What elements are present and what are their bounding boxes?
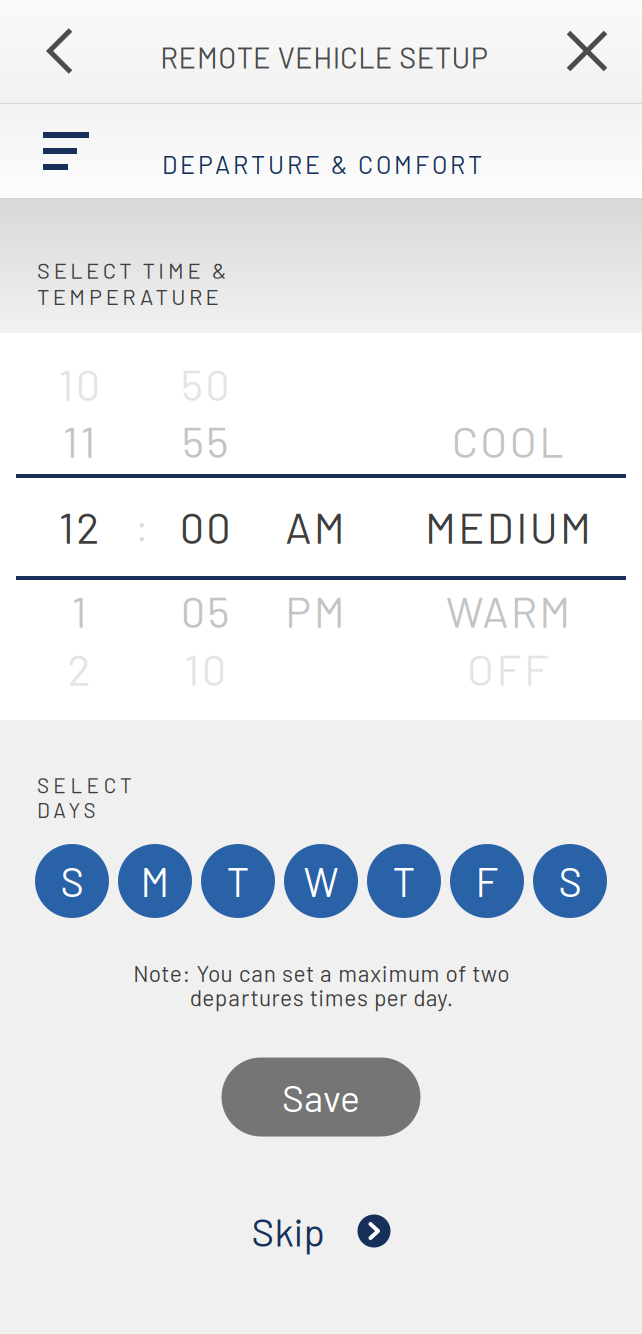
staticText: T: [226, 857, 249, 905]
button[interactable]: S: [533, 844, 607, 918]
staticText: COOL: [452, 415, 564, 466]
staticText: M: [140, 857, 169, 905]
staticText: OFF: [467, 643, 549, 694]
staticText: 10: [58, 358, 100, 409]
staticText: 55: [182, 415, 228, 466]
staticText: 00: [180, 501, 230, 552]
staticText: Skip: [251, 1208, 324, 1254]
button[interactable]: Menu: [11, 104, 121, 198]
staticText: 12: [59, 501, 99, 552]
staticText: 05: [181, 585, 229, 636]
staticText: REMOTE VEHICLE SETUP: [160, 40, 488, 74]
staticText: Save: [282, 1074, 360, 1119]
staticText: WARM: [446, 585, 570, 636]
staticText: SELECT TIME & TEMPERATURE: [37, 257, 419, 283]
button[interactable]: M: [118, 844, 192, 918]
staticText: PM: [285, 585, 345, 636]
staticText: DEPARTURE & COMFORT: [162, 149, 482, 179]
staticText: T: [392, 857, 415, 905]
button[interactable]: Back: [0, 0, 120, 102]
staticText: 2: [67, 643, 90, 694]
button[interactable]: F: [450, 844, 524, 918]
staticText: 11: [63, 415, 95, 466]
staticText: W: [303, 857, 338, 905]
staticText: :: [135, 502, 149, 550]
button[interactable]: W: [284, 844, 358, 918]
button[interactable]: Skip: [251, 1201, 390, 1261]
button[interactable]: T: [201, 844, 275, 918]
staticText: S: [60, 857, 83, 905]
button[interactable]: Close: [532, 0, 642, 102]
staticText: Note: You can set a maximum of two depar…: [133, 959, 509, 1011]
button[interactable]: T: [367, 844, 441, 918]
staticText: SELECT DAYS: [37, 773, 203, 797]
staticText: AM: [285, 501, 345, 552]
staticText: MEDIUM: [425, 501, 591, 552]
staticText: 50: [181, 358, 229, 409]
staticText: 10: [184, 643, 226, 694]
staticText: F: [475, 857, 498, 905]
staticText: S: [558, 857, 581, 905]
button[interactable]: S: [35, 844, 109, 918]
button[interactable]: Save: [221, 1057, 420, 1136]
staticText: 1: [71, 585, 86, 636]
